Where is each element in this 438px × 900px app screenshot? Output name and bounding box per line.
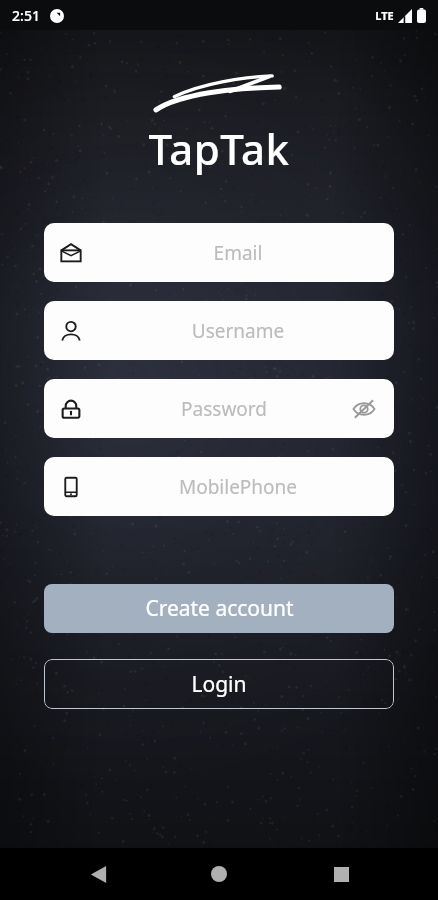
staticText: Email <box>98 240 378 266</box>
button[interactable]: Back <box>74 850 122 898</box>
button[interactable]: Password <box>44 379 394 438</box>
staticText: 2:51 <box>12 6 40 25</box>
staticText: LTE <box>375 8 394 23</box>
button[interactable]: Email <box>44 223 394 282</box>
staticText: Password <box>98 396 350 422</box>
staticText: MobilePhone <box>98 474 378 500</box>
staticText: Create account <box>145 594 294 623</box>
button[interactable]: Toggle password visibility <box>350 395 378 423</box>
button[interactable]: Login <box>44 659 394 709</box>
button[interactable]: Username <box>44 301 394 360</box>
button[interactable]: MobilePhone <box>44 457 394 516</box>
button[interactable]: Recent apps <box>317 850 365 898</box>
staticText: Login <box>191 670 247 699</box>
staticText: TapTak <box>148 120 290 177</box>
button[interactable]: Home <box>195 850 243 898</box>
button[interactable]: Create account <box>44 584 394 633</box>
staticText: Username <box>98 318 378 344</box>
